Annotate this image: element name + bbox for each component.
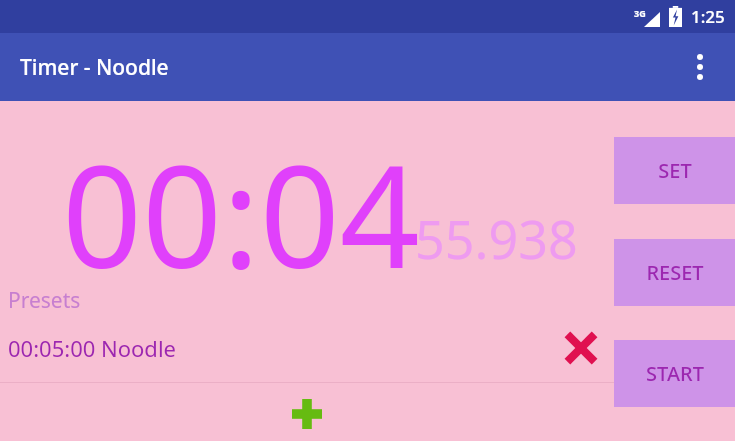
staticText: Timer - Noodle (20, 53, 169, 82)
button[interactable]: START (614, 340, 735, 407)
staticText: RESET (646, 259, 704, 286)
staticText: 00:05:00 Noodle (8, 333, 176, 363)
staticText: 3G (634, 7, 646, 19)
staticText: START (646, 360, 704, 387)
button[interactable]: Add preset (285, 392, 329, 436)
button[interactable]: 00:05:00 Noodle (0, 322, 735, 374)
button[interactable]: Delete preset (558, 325, 604, 371)
button[interactable]: More options (679, 46, 721, 88)
staticText: 00:04 (62, 118, 420, 309)
staticText: Presets (8, 286, 81, 315)
button[interactable]: SET (614, 137, 735, 204)
staticText: 1:25 (691, 5, 725, 28)
staticText: SET (658, 157, 692, 184)
staticText: 55.938 (415, 203, 578, 274)
button[interactable]: RESET (614, 239, 735, 306)
